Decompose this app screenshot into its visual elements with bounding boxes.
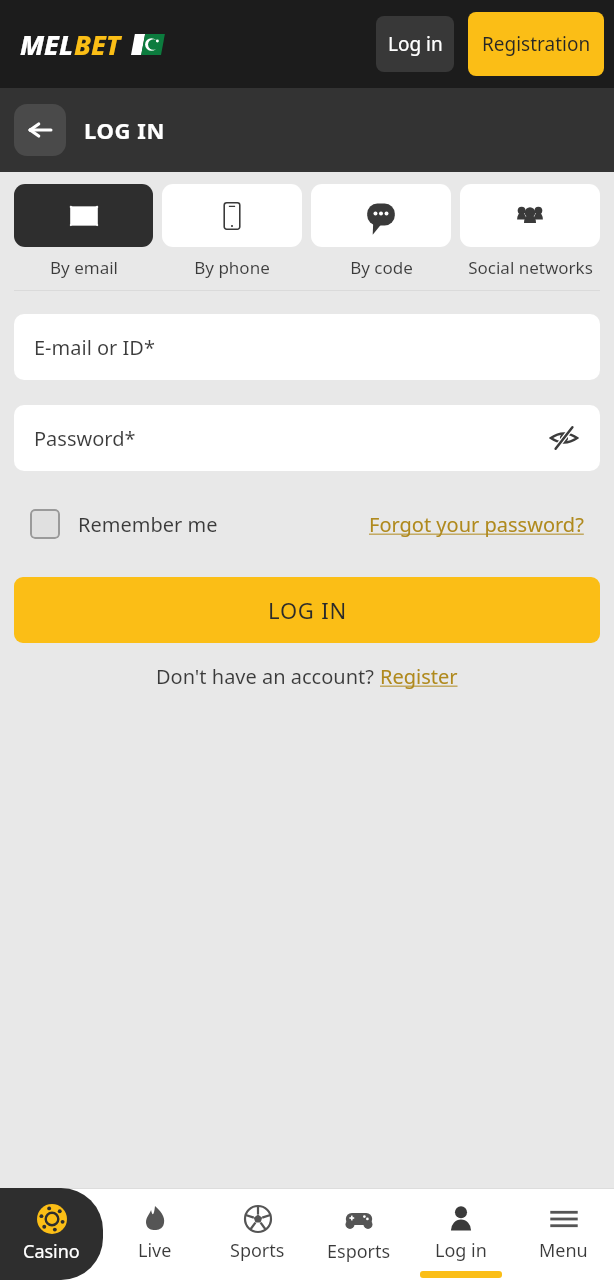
staticText: Social networks	[468, 256, 593, 279]
staticText: Log in	[388, 31, 443, 57]
button[interactable]: Live	[103, 1188, 206, 1280]
staticText: BET	[74, 26, 121, 63]
staticText: E-mail or ID*	[34, 334, 155, 361]
staticText: Remember me	[78, 511, 218, 538]
button[interactable]: Social networks	[460, 184, 600, 279]
staticText: Password*	[34, 425, 136, 452]
staticText: By phone	[194, 256, 270, 279]
button[interactable]: Esports	[308, 1188, 410, 1280]
button[interactable]: By email	[14, 184, 153, 279]
staticText: Live	[138, 1238, 172, 1263]
button[interactable]: By phone	[162, 184, 302, 279]
staticText: By email	[50, 256, 118, 279]
button[interactable]: Register	[380, 663, 458, 690]
button[interactable]: Registration	[468, 12, 604, 76]
button[interactable]: Sports	[206, 1188, 308, 1280]
button[interactable]: Back	[14, 104, 66, 156]
staticText: Register	[380, 663, 458, 690]
staticText: LOG IN	[268, 595, 347, 625]
button[interactable]: Log in	[410, 1188, 512, 1280]
button[interactable]: By code	[311, 184, 451, 279]
staticText: Log in	[435, 1238, 487, 1263]
button[interactable]: LOG IN	[14, 577, 600, 643]
staticText: Forgot your password?	[369, 511, 584, 538]
staticText: LOG IN	[84, 115, 165, 145]
staticText: Registration	[482, 31, 591, 57]
button[interactable]: Show password	[546, 420, 582, 456]
button[interactable]: E-mail or ID*	[14, 314, 600, 380]
button[interactable]: Forgot your password?	[369, 511, 584, 538]
staticText: Sports	[230, 1238, 285, 1263]
staticText: MEL	[20, 26, 74, 63]
staticText: Esports	[327, 1239, 391, 1264]
staticText: Don't have an account?	[156, 663, 380, 690]
staticText: By code	[350, 256, 413, 279]
button[interactable]: Casino	[0, 1188, 103, 1280]
button[interactable]: Remember me	[30, 509, 218, 539]
staticText: Casino	[23, 1239, 80, 1264]
staticText: Menu	[539, 1238, 588, 1263]
button[interactable]: Log in	[376, 16, 454, 72]
button[interactable]: Password*	[14, 405, 600, 471]
button[interactable]: Menu	[512, 1188, 614, 1280]
